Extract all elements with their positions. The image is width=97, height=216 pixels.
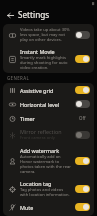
staticText: GENERAL (7, 75, 30, 81)
button[interactable]: Mirror reflection (3, 125, 94, 144)
staticText: Timer (20, 115, 35, 122)
button[interactable]: Videos take up about 30% less space, but… (3, 24, 94, 45)
staticText: Front camera only (20, 135, 55, 141)
button[interactable]: Location tag (75, 185, 90, 193)
button[interactable]: Location tag (3, 177, 94, 200)
staticText: Tag photos and videos with location info… (20, 187, 72, 197)
button[interactable]: Add watermark (3, 144, 94, 177)
button[interactable]: Off (75, 114, 90, 122)
staticText: Mirror reflection (20, 128, 62, 135)
staticText: Settings (18, 9, 50, 20)
button[interactable]: Assistive grid (75, 86, 90, 94)
staticText: Smartly mark highlights during shooting … (20, 55, 72, 70)
button[interactable]: Mute (3, 200, 94, 214)
button[interactable]: Horizontal level (75, 100, 90, 108)
button[interactable]: Efficient video format (75, 31, 90, 39)
button[interactable]: Add watermark (75, 157, 90, 165)
button[interactable]: Instant Movie (75, 55, 90, 63)
staticText: Location tag (20, 180, 52, 187)
button[interactable]: Floating shutter (3, 214, 94, 216)
button[interactable]: Horizontal level (3, 97, 94, 111)
staticText: Automatically add an Honor watermark to … (20, 154, 72, 174)
button[interactable]: Back (4, 9, 16, 21)
button[interactable]: Assistive grid (3, 83, 94, 97)
button[interactable]: Mirror reflection (75, 131, 90, 139)
staticText: Videos take up about 30% less space, but… (20, 27, 72, 42)
staticText: Mute (20, 204, 34, 211)
staticText: Add watermark (20, 147, 60, 154)
button[interactable]: Instant Movie (3, 45, 94, 73)
button[interactable]: Mute (75, 203, 90, 211)
button[interactable]: Timer (3, 111, 94, 125)
staticText: Instant Movie (20, 48, 55, 55)
staticText: Off (79, 115, 86, 121)
staticText: Assistive grid (20, 87, 54, 94)
staticText: Horizontal level (20, 101, 60, 108)
